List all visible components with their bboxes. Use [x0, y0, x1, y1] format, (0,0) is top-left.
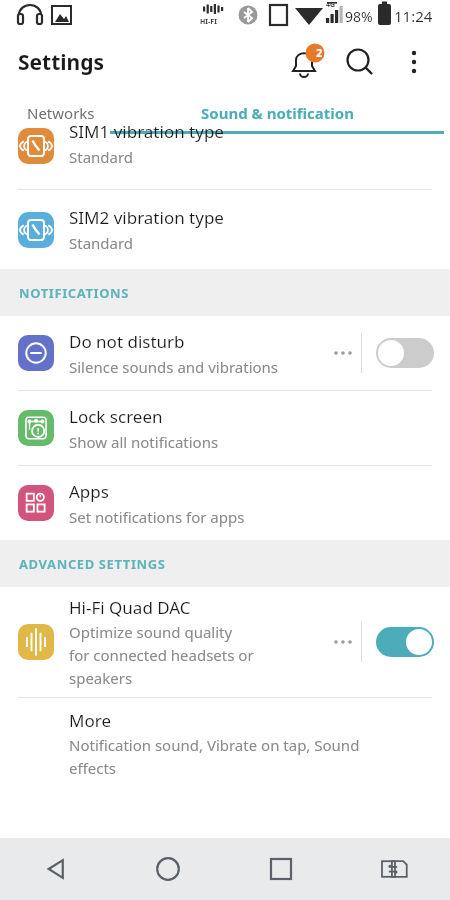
button[interactable]: Search — [338, 40, 382, 84]
staticText: More — [69, 709, 111, 732]
button[interactable]: Toggle — [376, 338, 434, 368]
button[interactable]: Networks — [18, 92, 104, 134]
button[interactable]: Recents — [224, 838, 337, 900]
button[interactable]: Notifications — [284, 40, 328, 84]
staticText: Networks — [27, 103, 95, 123]
staticText: Lock screen — [69, 405, 163, 428]
button[interactable]: Apps — [0, 466, 450, 540]
button[interactable]: Back — [0, 838, 112, 900]
button[interactable]: Do not disturb — [0, 316, 450, 390]
staticText: Notification sound, Vibrate on tap, Soun… — [69, 735, 360, 778]
staticText: 2 — [316, 45, 323, 60]
button[interactable]: More options — [394, 42, 434, 82]
staticText: Silence sounds and vibrations — [69, 357, 279, 377]
staticText: 4G — [326, 0, 336, 10]
button[interactable]: Hi-Fi Quad DAC — [0, 587, 450, 697]
staticText: Apps — [69, 480, 109, 503]
button[interactable]: Lock screen — [0, 391, 450, 465]
button[interactable]: More — [0, 698, 450, 788]
staticText: SIM2 vibration type — [69, 206, 224, 229]
staticText: Settings — [18, 48, 105, 77]
staticText: 11:24 — [394, 6, 433, 26]
staticText: Optimize sound quality for connected hea… — [69, 622, 254, 688]
button[interactable]: Toggle — [376, 627, 434, 657]
staticText: NOTIFICATIONS — [19, 284, 130, 302]
staticText: Sound & notification — [201, 103, 354, 123]
staticText: Show all notifications — [69, 432, 219, 452]
staticText: Set notifications for apps — [69, 507, 245, 527]
staticText: SIM1 vibration type — [69, 120, 224, 143]
staticText: Standard — [69, 233, 134, 253]
staticText: Hi-Fi Quad DAC — [69, 596, 191, 619]
button[interactable]: SIM2 vibration type — [0, 190, 450, 269]
staticText: ADVANCED SETTINGS — [19, 555, 166, 573]
button[interactable]: Sound & notification — [104, 92, 450, 134]
staticText: Standard — [69, 147, 134, 167]
button[interactable]: Home — [112, 838, 224, 900]
staticText: 98% — [345, 7, 373, 26]
staticText: Do not disturb — [69, 330, 185, 353]
button[interactable]: Switch windows — [337, 838, 450, 900]
staticText: HI-FI — [200, 17, 217, 27]
